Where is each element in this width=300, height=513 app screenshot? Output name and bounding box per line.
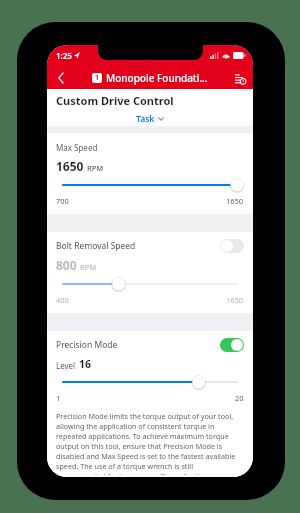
- staticText: 1: [56, 393, 61, 403]
- staticText: 1:25: [56, 50, 72, 61]
- staticText: 16: [79, 357, 92, 371]
- staticText: RPM: [87, 163, 104, 173]
- staticText: Bolt Removal Speed: [56, 240, 220, 252]
- staticText: RPM: [80, 262, 97, 272]
- staticText: 20: [235, 393, 244, 403]
- staticText: 700: [56, 196, 69, 206]
- staticText: 1650: [226, 196, 244, 206]
- staticText: Max Speed: [56, 142, 98, 153]
- staticText: Precision Mode limits the torque output …: [56, 411, 244, 475]
- staticText: 1650: [226, 295, 244, 305]
- button[interactable]: 1: [92, 71, 208, 85]
- staticText: Custom Drive Control: [56, 93, 174, 108]
- staticText: 800: [56, 257, 77, 273]
- button[interactable]: Filter list: [231, 69, 249, 87]
- staticText: Precision Mode: [56, 339, 220, 351]
- staticText: 1: [95, 73, 100, 83]
- button[interactable]: Toggle off: [220, 239, 244, 253]
- button[interactable]: Toggle on: [220, 338, 244, 352]
- button[interactable]: Back: [51, 69, 69, 87]
- button[interactable]: Task: [136, 113, 164, 125]
- staticText: Monopole Foundati...: [106, 71, 208, 85]
- staticText: Task: [136, 113, 155, 125]
- staticText: 1650: [56, 158, 84, 174]
- staticText: Level: [56, 360, 76, 371]
- staticText: 400: [56, 295, 69, 305]
